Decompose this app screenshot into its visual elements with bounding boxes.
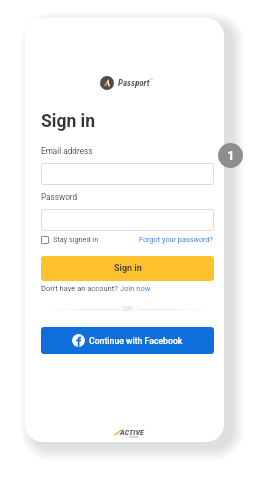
button[interactable]: [41, 163, 214, 185]
button[interactable]: Forgot your password?: [139, 235, 214, 244]
staticText: Don't have an account?: [41, 284, 120, 293]
staticText: Stay signed in: [53, 235, 99, 244]
button[interactable]: Sign in: [41, 256, 214, 281]
staticText: OR: [123, 305, 133, 313]
button[interactable]: [41, 209, 214, 231]
button[interactable]: Stay signed in: [41, 235, 99, 244]
staticText: ™: [150, 77, 154, 83]
staticText: Password: [41, 192, 78, 202]
staticText: ACTIVE: [120, 428, 144, 437]
staticText: Email address: [41, 146, 93, 156]
button[interactable]: Continue with Facebook: [41, 327, 214, 354]
staticText: Sign in: [41, 111, 96, 132]
staticText: 1: [227, 148, 235, 163]
staticText: Continue with Facebook: [89, 336, 183, 346]
button[interactable]: Step 1: [218, 143, 243, 168]
staticText: network: [129, 435, 139, 439]
staticText: Sign in: [114, 263, 142, 274]
button[interactable]: Join now: [120, 284, 151, 293]
staticText: Passport: [118, 78, 150, 89]
